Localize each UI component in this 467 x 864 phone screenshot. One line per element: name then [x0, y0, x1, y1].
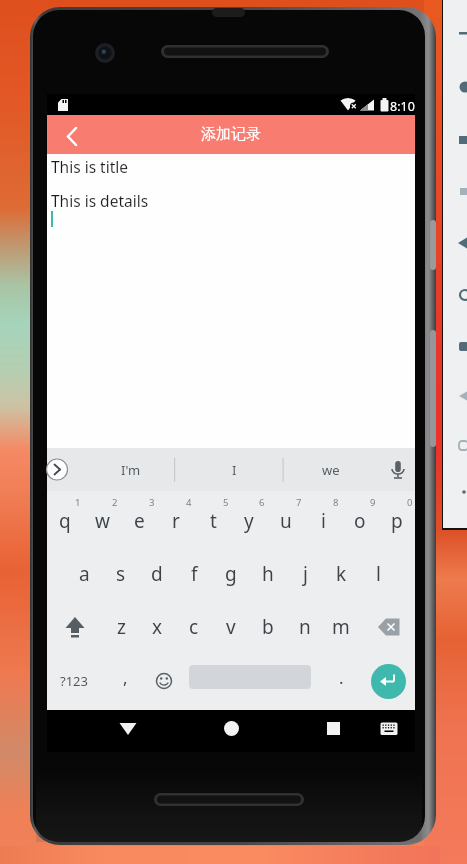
button[interactable]: .	[326, 659, 356, 695]
staticText: u	[280, 508, 292, 534]
staticText: 5	[223, 496, 229, 509]
button[interactable]: x	[139, 605, 175, 649]
staticText: m	[332, 614, 350, 640]
staticText: 4	[186, 496, 192, 509]
staticText: x	[152, 614, 163, 640]
staticText: l	[376, 561, 381, 587]
button[interactable]: w	[84, 499, 120, 543]
button[interactable]: l	[360, 552, 396, 596]
button[interactable]: u	[268, 499, 304, 543]
button[interactable]: I'm	[91, 455, 171, 485]
staticText: c	[189, 614, 199, 640]
button[interactable]: r	[158, 499, 194, 543]
button[interactable]: d	[139, 552, 175, 596]
button[interactable]: I	[194, 455, 274, 485]
staticText: s	[116, 561, 126, 587]
staticText: I'm	[121, 461, 141, 479]
button[interactable]	[113, 714, 143, 744]
button[interactable]: m	[323, 605, 359, 649]
staticText: t	[210, 508, 217, 534]
button[interactable]: b	[250, 605, 286, 649]
staticText: 8	[333, 496, 339, 509]
staticText: k	[336, 561, 347, 587]
staticText: a	[79, 561, 90, 587]
staticText: y	[244, 508, 254, 534]
staticText: p	[391, 508, 403, 534]
button[interactable]: h	[250, 552, 286, 596]
button[interactable]: j	[287, 552, 323, 596]
staticText: 8:10	[390, 98, 415, 115]
staticText: z	[117, 614, 126, 640]
staticText: 2	[112, 496, 118, 509]
button[interactable]: e	[121, 499, 157, 543]
staticText: 7	[296, 496, 302, 509]
button[interactable]: g	[213, 552, 249, 596]
button[interactable]: t	[195, 499, 231, 543]
button[interactable]: n	[287, 605, 323, 649]
button[interactable]: This is title	[51, 156, 129, 177]
button[interactable]: q	[47, 499, 83, 543]
staticText: .	[339, 666, 344, 689]
staticText: f	[191, 561, 198, 587]
button[interactable]: This is details	[51, 190, 149, 211]
button[interactable]: ,	[110, 659, 140, 695]
staticText: I	[232, 461, 237, 479]
button[interactable]: y	[231, 499, 267, 543]
button[interactable]	[47, 115, 415, 154]
staticText: b	[262, 614, 274, 640]
button[interactable]: f	[176, 552, 212, 596]
button[interactable]	[318, 714, 348, 744]
staticText: r	[172, 508, 180, 534]
button[interactable]: ?123	[52, 663, 96, 699]
button[interactable]	[371, 664, 406, 699]
staticText: ,	[123, 666, 128, 689]
staticText: ?123	[60, 672, 88, 690]
staticText: we	[322, 461, 340, 479]
button[interactable]: p	[379, 499, 415, 543]
staticText: o	[354, 508, 366, 534]
staticText: q	[59, 508, 71, 534]
button[interactable]: a	[66, 552, 102, 596]
staticText: 0	[407, 496, 413, 509]
button[interactable]: z	[103, 605, 139, 649]
staticText: j	[303, 561, 308, 587]
button[interactable]: k	[323, 552, 359, 596]
button[interactable]: we	[291, 455, 371, 485]
staticText: n	[299, 614, 311, 640]
button[interactable]: i	[305, 499, 341, 543]
button[interactable]: s	[103, 552, 139, 596]
staticText: 添加记录	[201, 125, 261, 144]
staticText: 3	[149, 496, 155, 509]
staticText: v	[226, 614, 236, 640]
button[interactable]: o	[342, 499, 378, 543]
button[interactable]: c	[176, 605, 212, 649]
staticText: 9	[370, 496, 376, 509]
staticText: w	[95, 508, 110, 534]
staticText: g	[225, 561, 237, 587]
staticText: d	[151, 561, 163, 587]
staticText: 1	[75, 496, 81, 509]
button[interactable]: v	[213, 605, 249, 649]
staticText: 6	[259, 496, 265, 509]
staticText: i	[321, 508, 326, 534]
staticText: h	[262, 561, 274, 587]
button[interactable]	[216, 714, 246, 744]
staticText: e	[134, 508, 145, 534]
